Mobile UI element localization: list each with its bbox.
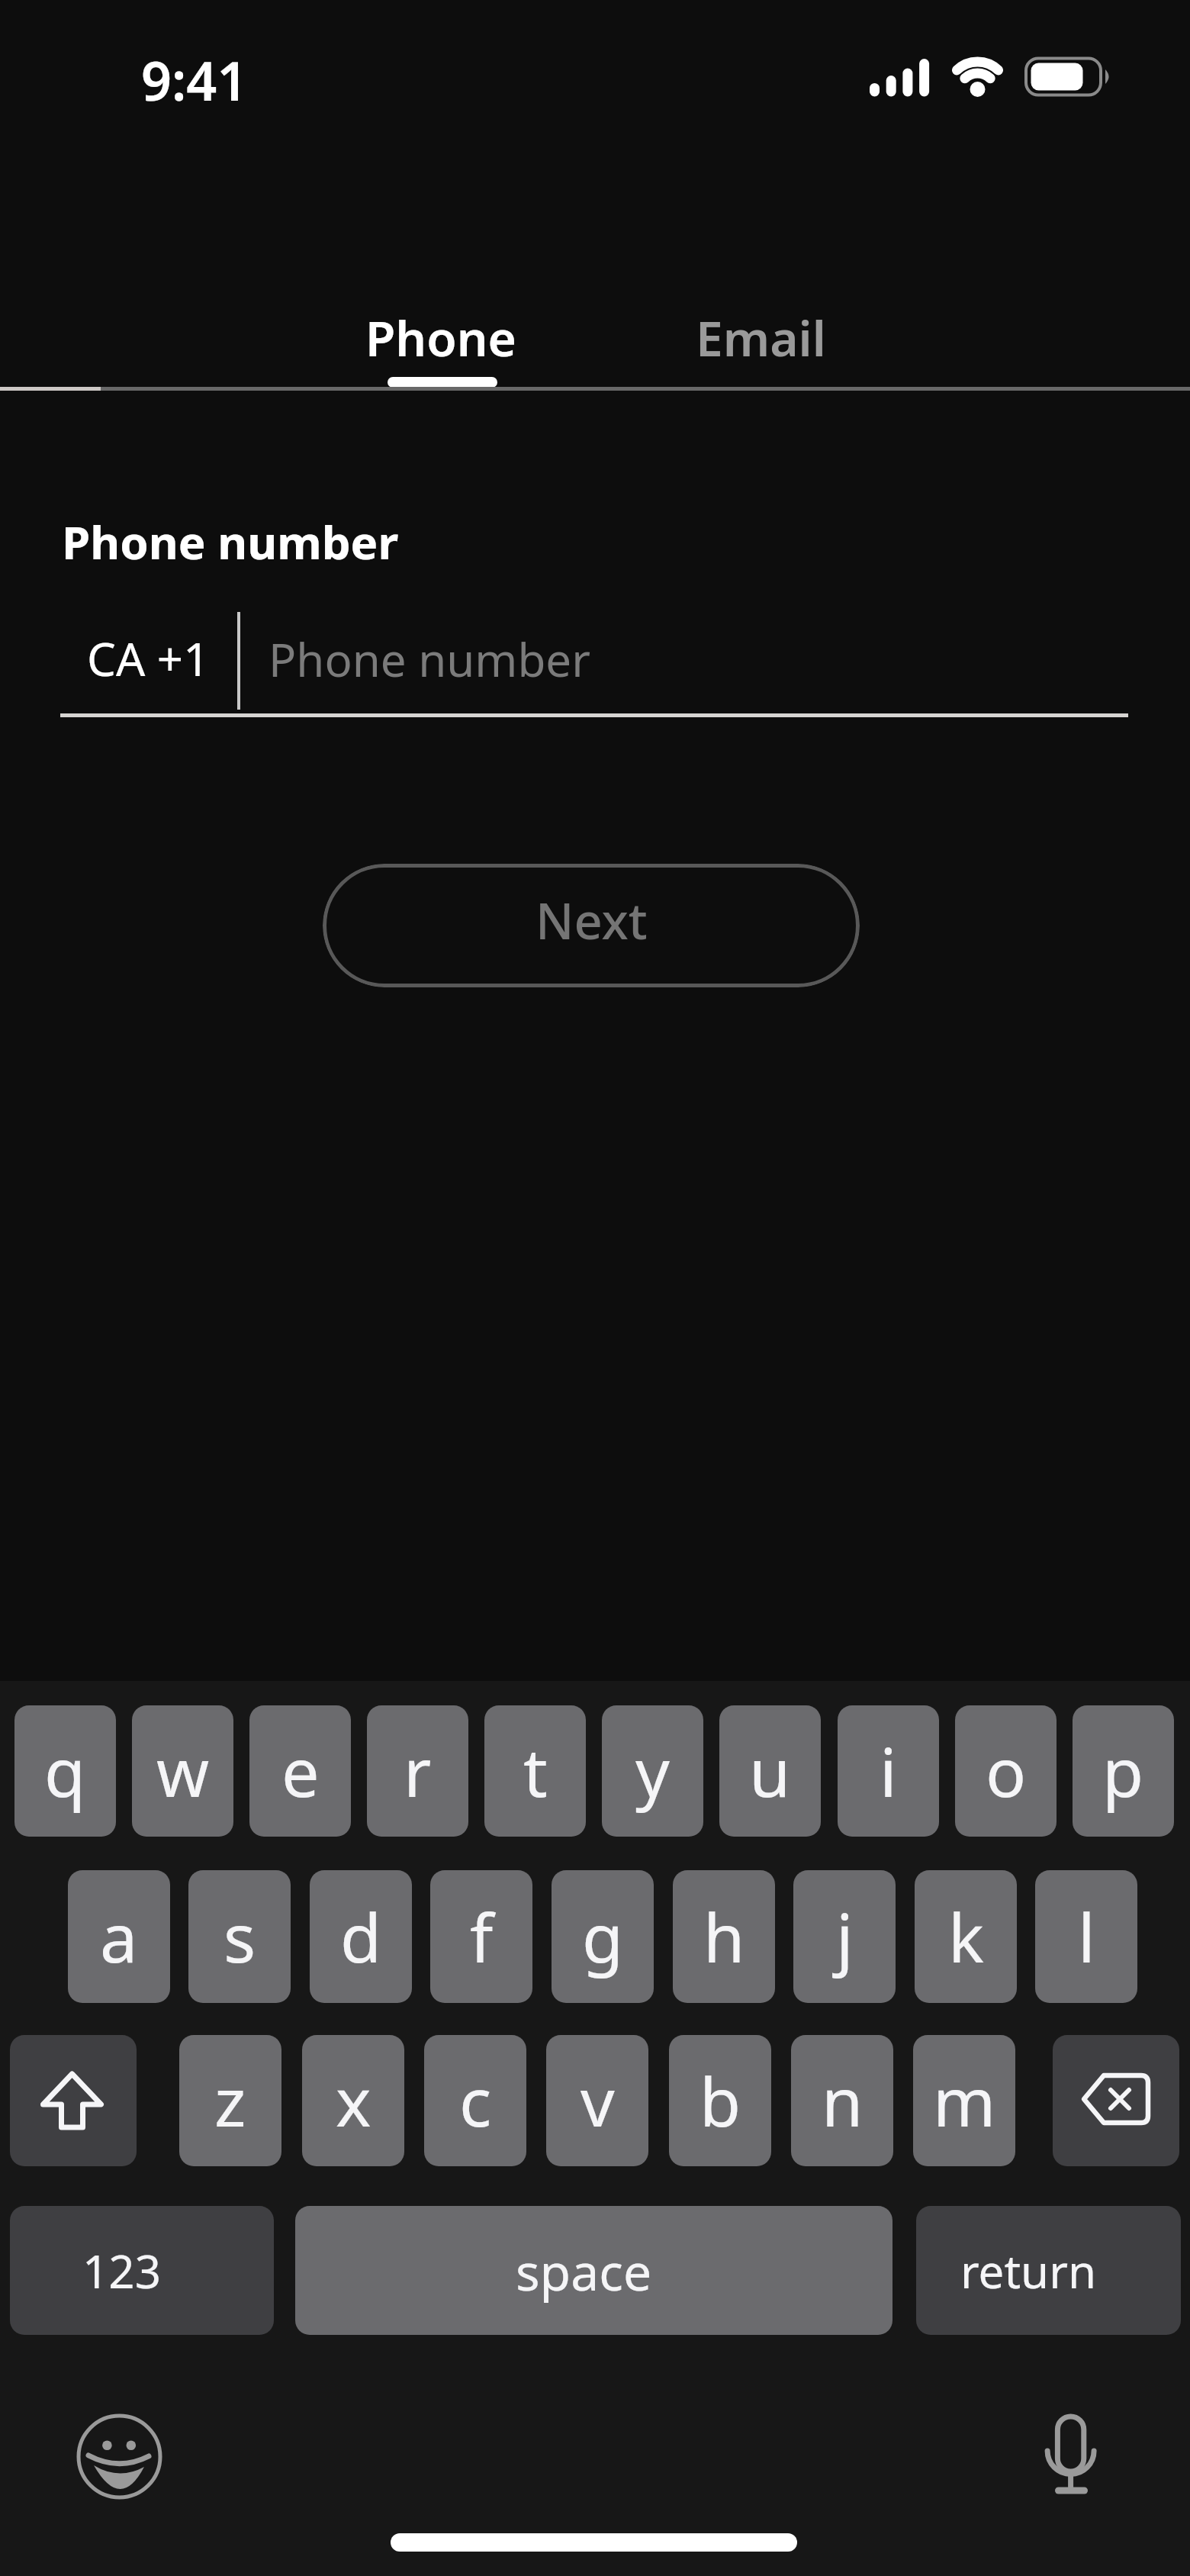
- button[interactable]: s: [188, 1870, 291, 2003]
- button[interactable]: 123: [10, 2206, 274, 2335]
- staticText: y: [635, 1725, 670, 1817]
- button[interactable]: z: [179, 2035, 281, 2166]
- staticText: Phone number: [62, 510, 399, 565]
- button[interactable]: q: [14, 1705, 116, 1837]
- button[interactable]: m: [913, 2035, 1015, 2166]
- staticText: b: [700, 2055, 741, 2146]
- staticText: Phone number: [269, 628, 590, 683]
- button[interactable]: t: [484, 1705, 586, 1837]
- staticText: z: [214, 2055, 246, 2146]
- button[interactable]: u: [719, 1705, 821, 1837]
- staticText: e: [281, 1725, 320, 1817]
- button[interactable]: Email: [646, 304, 875, 364]
- staticText: CA +1: [87, 627, 210, 682]
- staticText: v: [581, 2055, 615, 2146]
- button[interactable]: d: [310, 1870, 412, 2003]
- staticText: x: [336, 2055, 371, 2146]
- staticText: u: [749, 1725, 791, 1817]
- staticText: s: [224, 1891, 256, 1982]
- staticText: t: [523, 1725, 548, 1817]
- staticText: m: [933, 2055, 996, 2146]
- button[interactable]: l: [1035, 1870, 1137, 2003]
- staticText: c: [459, 2055, 492, 2146]
- staticText: h: [703, 1891, 745, 1982]
- staticText: Next: [535, 887, 648, 955]
- button[interactable]: [10, 2035, 137, 2166]
- button[interactable]: CA +1: [87, 627, 316, 682]
- staticText: o: [986, 1725, 1027, 1817]
- button[interactable]: Phone: [326, 304, 555, 364]
- button[interactable]: p: [1073, 1705, 1174, 1837]
- staticText: k: [948, 1891, 984, 1982]
- staticText: space: [516, 2236, 652, 2305]
- button[interactable]: Phone number: [269, 628, 726, 683]
- button[interactable]: h: [673, 1870, 775, 2003]
- staticText: p: [1102, 1725, 1144, 1817]
- staticText: f: [470, 1891, 494, 1982]
- staticText: d: [340, 1891, 382, 1982]
- staticText: r: [404, 1725, 432, 1817]
- staticText: Phone: [365, 304, 516, 364]
- button[interactable]: b: [669, 2035, 771, 2166]
- button[interactable]: f: [430, 1870, 532, 2003]
- staticText: i: [880, 1725, 897, 1817]
- staticText: Email: [696, 304, 826, 364]
- button[interactable]: r: [367, 1705, 468, 1837]
- staticText: 9:41: [141, 43, 248, 112]
- button[interactable]: g: [552, 1870, 654, 2003]
- button[interactable]: space: [295, 2206, 892, 2335]
- button[interactable]: w: [132, 1705, 233, 1837]
- button[interactable]: y: [602, 1705, 703, 1837]
- staticText: w: [156, 1725, 210, 1817]
- staticText: l: [1078, 1891, 1095, 1982]
- button[interactable]: return: [916, 2206, 1181, 2335]
- button[interactable]: n: [791, 2035, 893, 2166]
- button[interactable]: e: [249, 1705, 351, 1837]
- button[interactable]: o: [955, 1705, 1057, 1837]
- staticText: j: [836, 1891, 854, 1982]
- button[interactable]: [1053, 2035, 1179, 2166]
- button[interactable]: a: [68, 1870, 170, 2003]
- button[interactable]: v: [546, 2035, 648, 2166]
- staticText: n: [822, 2055, 864, 2146]
- staticText: a: [100, 1891, 138, 1982]
- button[interactable]: [71, 2408, 169, 2506]
- staticText: q: [44, 1725, 86, 1817]
- staticText: 123: [82, 2240, 161, 2302]
- button[interactable]: i: [838, 1705, 939, 1837]
- staticText: g: [582, 1891, 624, 1982]
- button[interactable]: j: [793, 1870, 896, 2003]
- button[interactable]: [1039, 2408, 1103, 2501]
- button[interactable]: x: [302, 2035, 404, 2166]
- button[interactable]: c: [424, 2035, 526, 2166]
- staticText: return: [960, 2240, 1097, 2302]
- button[interactable]: Next: [323, 864, 860, 987]
- button[interactable]: k: [915, 1870, 1017, 2003]
